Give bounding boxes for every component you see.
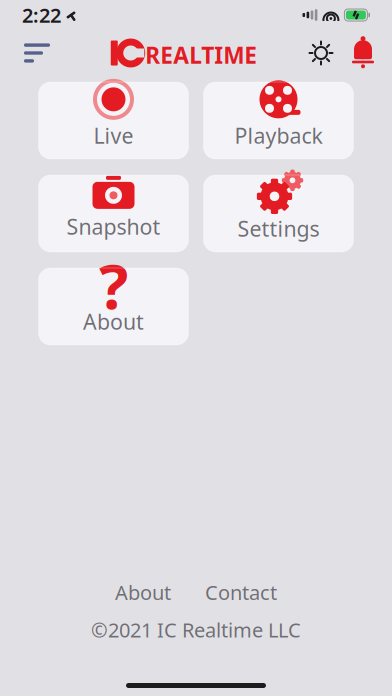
button[interactable]: Menu bbox=[14, 31, 62, 75]
staticText: ? bbox=[99, 245, 128, 326]
staticText: About bbox=[83, 307, 144, 336]
button[interactable]: About bbox=[109, 576, 177, 608]
button[interactable]: Notifications bbox=[348, 33, 378, 73]
button[interactable]: Playback bbox=[203, 82, 353, 159]
button[interactable]: ? bbox=[38, 268, 188, 345]
button[interactable]: Snapshot bbox=[38, 175, 188, 252]
staticText: 2:22 bbox=[22, 2, 61, 28]
button[interactable]: Contact bbox=[199, 576, 283, 608]
staticText: Live bbox=[93, 121, 133, 150]
staticText: Snapshot bbox=[66, 212, 160, 241]
button[interactable]: Settings bbox=[203, 175, 353, 252]
staticText: About bbox=[115, 579, 171, 605]
staticText: REALTIME bbox=[145, 40, 257, 70]
staticText: Settings bbox=[237, 214, 319, 243]
button[interactable]: Brightness bbox=[306, 32, 336, 74]
staticText: Contact bbox=[205, 579, 277, 605]
staticText: ©2021 IC Realtime LLC bbox=[91, 616, 301, 643]
button[interactable]: Live bbox=[38, 82, 188, 159]
staticText: Playback bbox=[234, 121, 322, 150]
